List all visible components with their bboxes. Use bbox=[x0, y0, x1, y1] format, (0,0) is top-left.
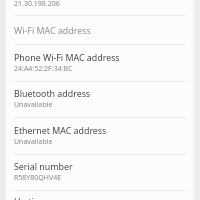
staticText: 24:A4:52:2F:34:BC bbox=[14, 64, 73, 74]
staticText: Unavailable bbox=[14, 100, 53, 110]
staticText: Ethernet MAC address bbox=[14, 125, 107, 137]
staticText: 21.30.198.206 bbox=[14, 0, 60, 9]
button[interactable]: Phone Wi-Fi MAC address bbox=[0, 45, 200, 81]
staticText: Phone Wi-Fi MAC address bbox=[14, 52, 120, 64]
staticText: Serial number bbox=[14, 161, 73, 173]
staticText: Unavailable bbox=[14, 137, 53, 147]
staticText: Up time bbox=[14, 196, 47, 200]
button[interactable]: Ethernet MAC address bbox=[0, 118, 200, 154]
button[interactable]: Up time bbox=[0, 191, 200, 200]
button[interactable]: Bluetooth address bbox=[0, 82, 200, 117]
staticText: Wi-Fi MAC address bbox=[14, 25, 91, 37]
staticText: R58Y80QHV4E bbox=[14, 173, 62, 183]
button[interactable]: Wi-Fi MAC address bbox=[0, 16, 200, 44]
staticText: Bluetooth address bbox=[14, 88, 91, 100]
button[interactable]: Serial number bbox=[0, 155, 200, 190]
